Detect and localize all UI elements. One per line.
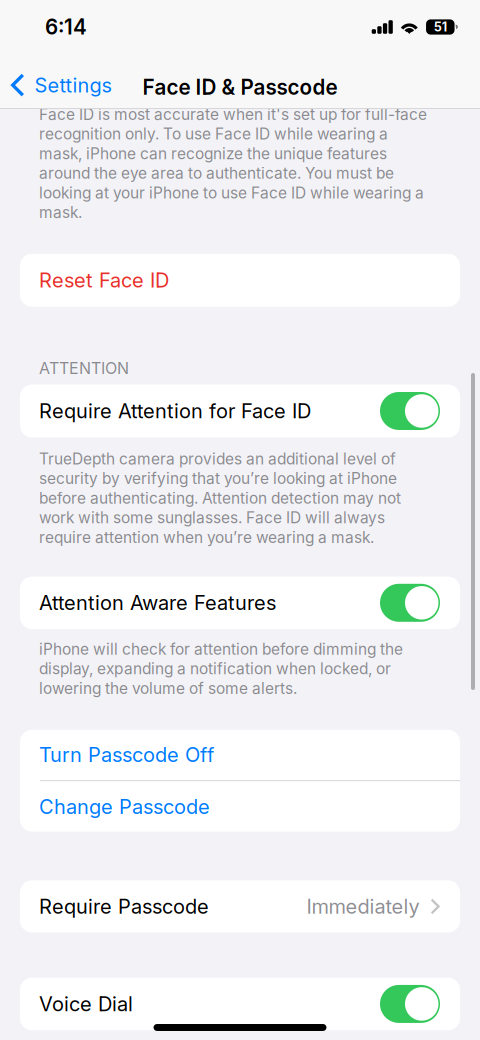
staticText: Reset Face ID <box>39 268 169 292</box>
staticText: looking at your iPhone to use Face ID wh… <box>39 183 424 202</box>
staticText: Require Attention for Face ID <box>39 399 311 423</box>
button[interactable]: Attention Aware Features <box>20 576 460 629</box>
button[interactable]: Settings <box>11 64 119 106</box>
staticText: mask, iPhone can recognize the unique fe… <box>39 144 387 163</box>
staticText: Face ID is most accurate when it's set u… <box>39 105 427 124</box>
button[interactable]: Require Attention for Face ID <box>20 384 460 437</box>
button[interactable]: Change Passcode <box>20 781 460 832</box>
staticText: around the eye area to authenticate. You… <box>39 164 394 182</box>
staticText: TrueDepth camera provides an additional … <box>39 449 396 468</box>
staticText: iPhone will check for attention before d… <box>39 640 403 658</box>
staticText: Voice Dial <box>39 992 133 1016</box>
staticText: Immediately <box>306 894 419 918</box>
staticText: work with some sunglasses. Face ID will … <box>39 508 385 527</box>
staticText: before authenticating. Attention detecti… <box>39 489 401 507</box>
staticText: security by verifying that you’re lookin… <box>39 469 397 488</box>
staticText: Face ID & Passcode <box>142 75 337 100</box>
staticText: Change Passcode <box>39 795 210 819</box>
button[interactable]: Require Passcode <box>20 880 460 932</box>
staticText: require attention when you’re wearing a … <box>39 528 374 547</box>
staticText: 51 <box>434 19 447 35</box>
staticText: Attention Aware Features <box>39 591 276 615</box>
staticText: ATTENTION <box>39 358 129 378</box>
staticText: Turn Passcode Off <box>39 743 214 767</box>
staticText: Require Passcode <box>39 894 209 918</box>
staticText: mask. <box>39 203 82 222</box>
staticText: display, expanding a notification when l… <box>39 659 391 678</box>
button[interactable]: Reset Face ID <box>20 254 460 307</box>
button[interactable]: Turn Passcode Off <box>20 729 460 780</box>
staticText: 6:14 <box>45 14 87 39</box>
staticText: lowering the volume of some alerts. <box>39 679 297 698</box>
button[interactable]: Voice Dial <box>20 978 460 1030</box>
staticText: Settings <box>34 73 111 97</box>
staticText: recognition only. To use Face ID while w… <box>39 125 388 143</box>
